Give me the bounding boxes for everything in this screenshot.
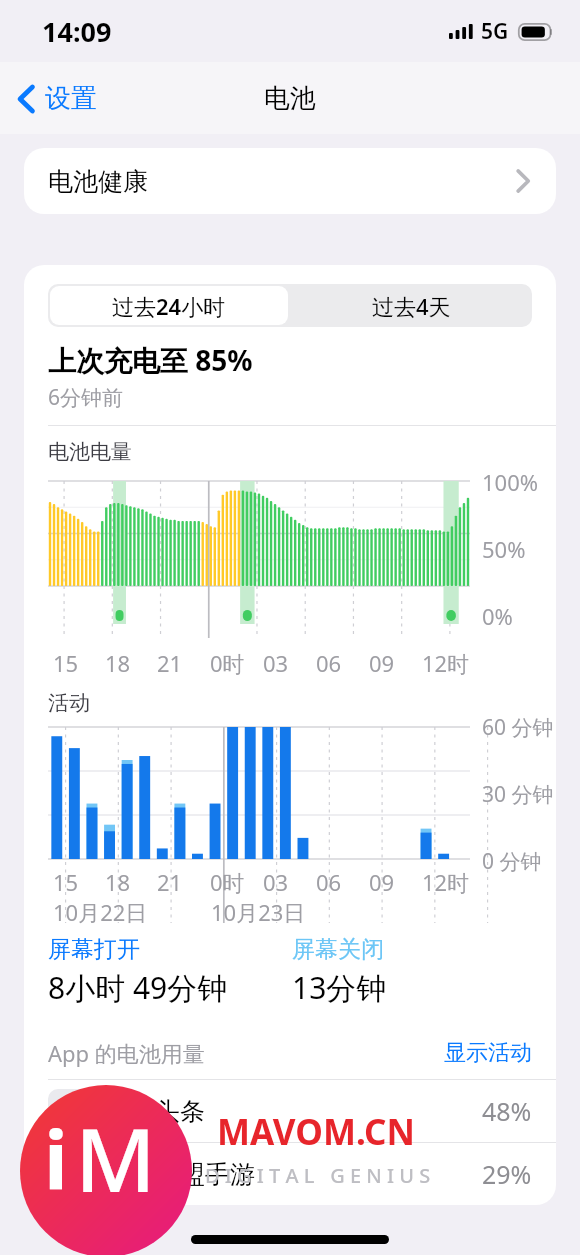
staticText: M [75,1098,156,1218]
button[interactable]: 今日头条 [24,1080,556,1142]
staticText: 5G [481,17,509,46]
staticText: 英雄联盟手游 [105,1159,255,1190]
staticText: 29% [482,1157,532,1191]
staticText: 显示活动 [444,1039,532,1067]
staticText: 过去24小时 [112,291,226,321]
staticText: 13分钟 [292,967,387,1008]
staticText: 设置 [45,82,97,115]
staticText: D I G I T A L G E N I U S [205,1162,431,1189]
staticText: 屏幕打开 [48,935,140,964]
staticText: 18 [105,648,131,678]
staticText: 09 [369,648,395,678]
staticText: 06 [316,648,342,678]
staticText: 50% [482,534,526,564]
staticText: 12时 [422,867,470,897]
button[interactable]: 电池健康 [24,148,556,214]
staticText: 电池 [264,82,316,115]
button[interactable]: 过去24小时 [50,286,288,325]
staticText: 过去4天 [372,291,451,321]
staticText: 0时 [210,867,245,897]
staticText: 8小时 49分钟 [48,967,228,1008]
staticText: i [44,1104,68,1213]
staticText: 6分钟前 [48,383,124,412]
staticText: 屏幕关闭 [292,935,384,964]
staticText: App 的电池用量 [48,1038,205,1068]
staticText: 10月22日 [53,897,148,927]
staticText: 03 [263,648,289,678]
staticText: 12时 [422,648,470,678]
staticText: 10月23日 [211,897,306,927]
staticText: 0时 [210,648,245,678]
staticText: 09 [369,867,395,897]
button[interactable]: 过去4天 [290,284,532,327]
staticText: MAVOM.CN [217,1108,415,1156]
staticText: 活动 [48,690,90,716]
staticText: 48% [482,1094,532,1128]
staticText: 18 [105,867,131,897]
staticText: 电池健康 [48,166,148,197]
staticText: 15 [53,648,79,678]
button[interactable]: 英雄联盟手游 [24,1143,556,1205]
staticText: 06 [316,867,342,897]
staticText: 上次充电至 85% [48,341,253,379]
staticText: 21 [157,648,183,678]
staticText: 14:09 [42,13,112,50]
button[interactable]: 显示活动 [444,1039,532,1067]
staticText: 今日头条 [105,1096,205,1127]
staticText: 03 [263,867,289,897]
button[interactable]: 设置 [12,74,103,123]
staticText: 100% [482,467,539,497]
staticText: 15 [53,867,79,897]
staticText: 30 分钟 [482,780,554,809]
other: iM Mavom logo [20,1085,192,1255]
staticText: 0% [482,601,513,631]
staticText: 21 [157,867,183,897]
staticText: 电池电量 [48,439,132,465]
staticText: 60 分钟 [482,713,554,742]
staticText: 0 分钟 [482,847,542,876]
